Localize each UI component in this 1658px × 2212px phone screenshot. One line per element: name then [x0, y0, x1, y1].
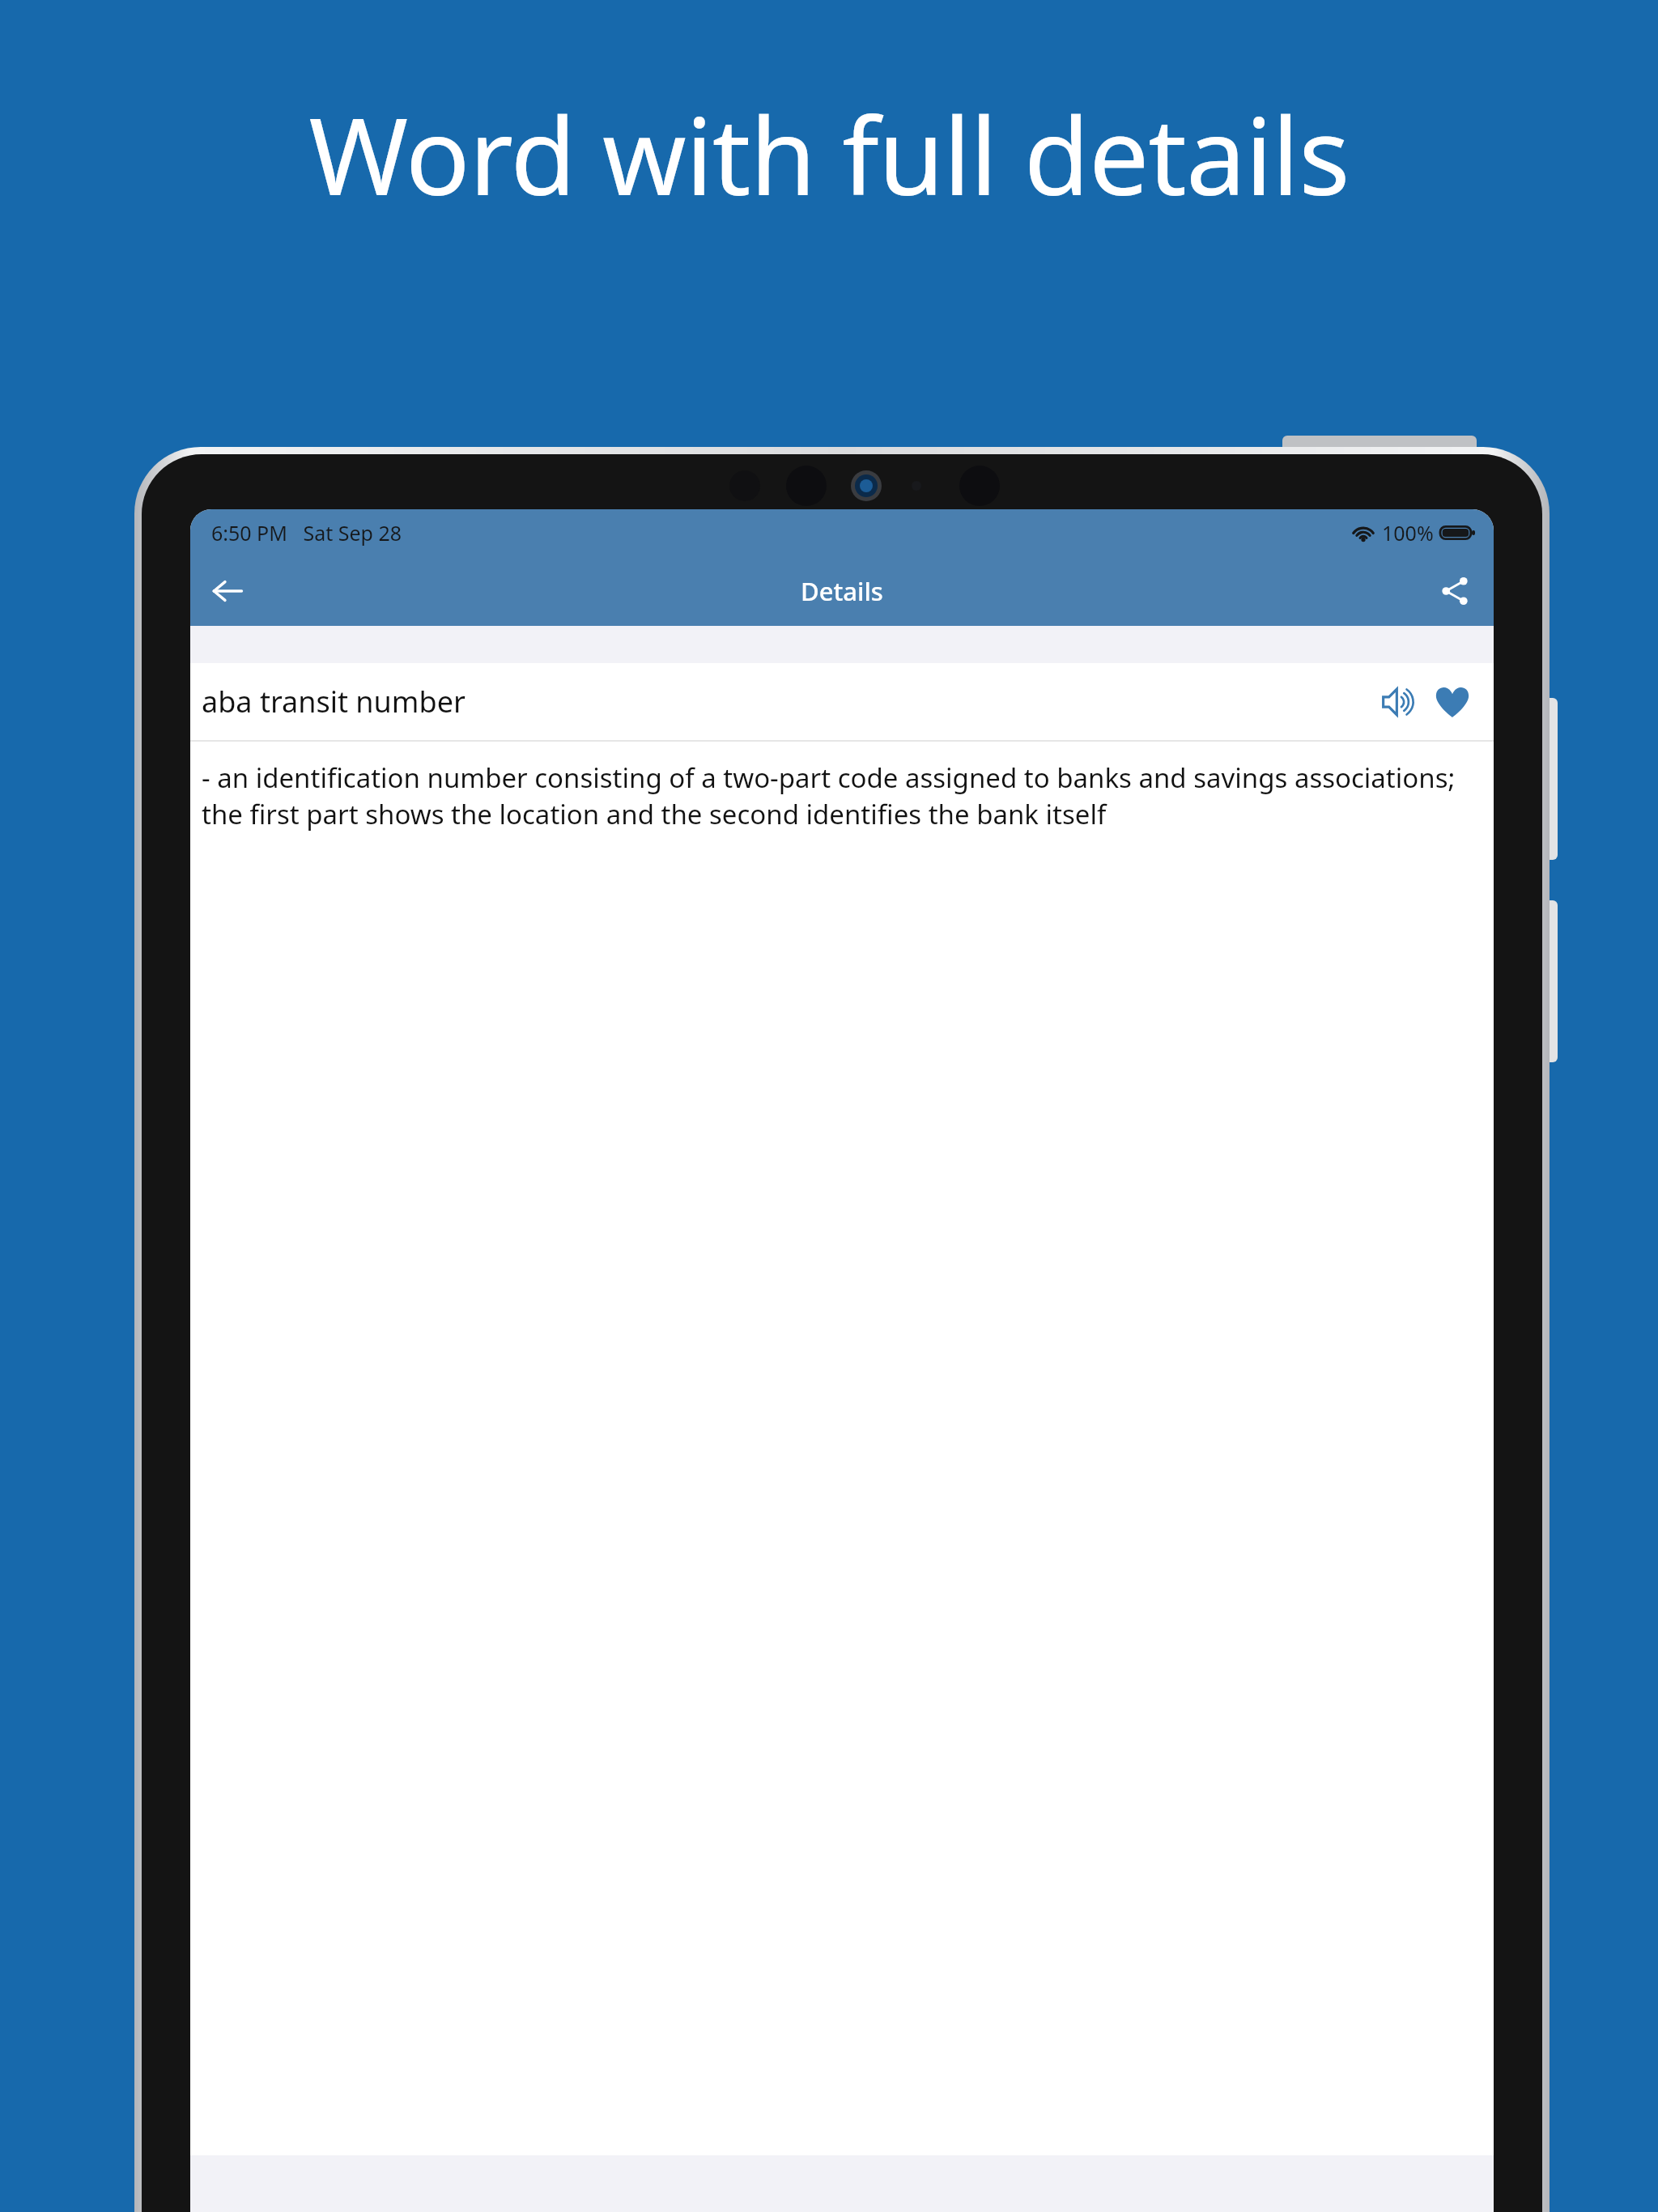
staticText: - an identification number consisting of…: [202, 759, 1469, 832]
staticText: 100%: [1382, 519, 1434, 547]
staticText: Word with full details: [0, 81, 1658, 227]
button[interactable]: Favorite: [1427, 677, 1477, 727]
staticText: Details: [801, 574, 883, 608]
button[interactable]: Pronounce: [1374, 677, 1424, 727]
button[interactable]: Share: [1424, 560, 1486, 622]
button[interactable]: Back: [197, 560, 258, 622]
staticText: aba transit number: [202, 682, 466, 721]
button[interactable]: aba transit number: [190, 663, 1494, 740]
staticText: 6:50 PM Sat Sep 28: [211, 519, 402, 547]
